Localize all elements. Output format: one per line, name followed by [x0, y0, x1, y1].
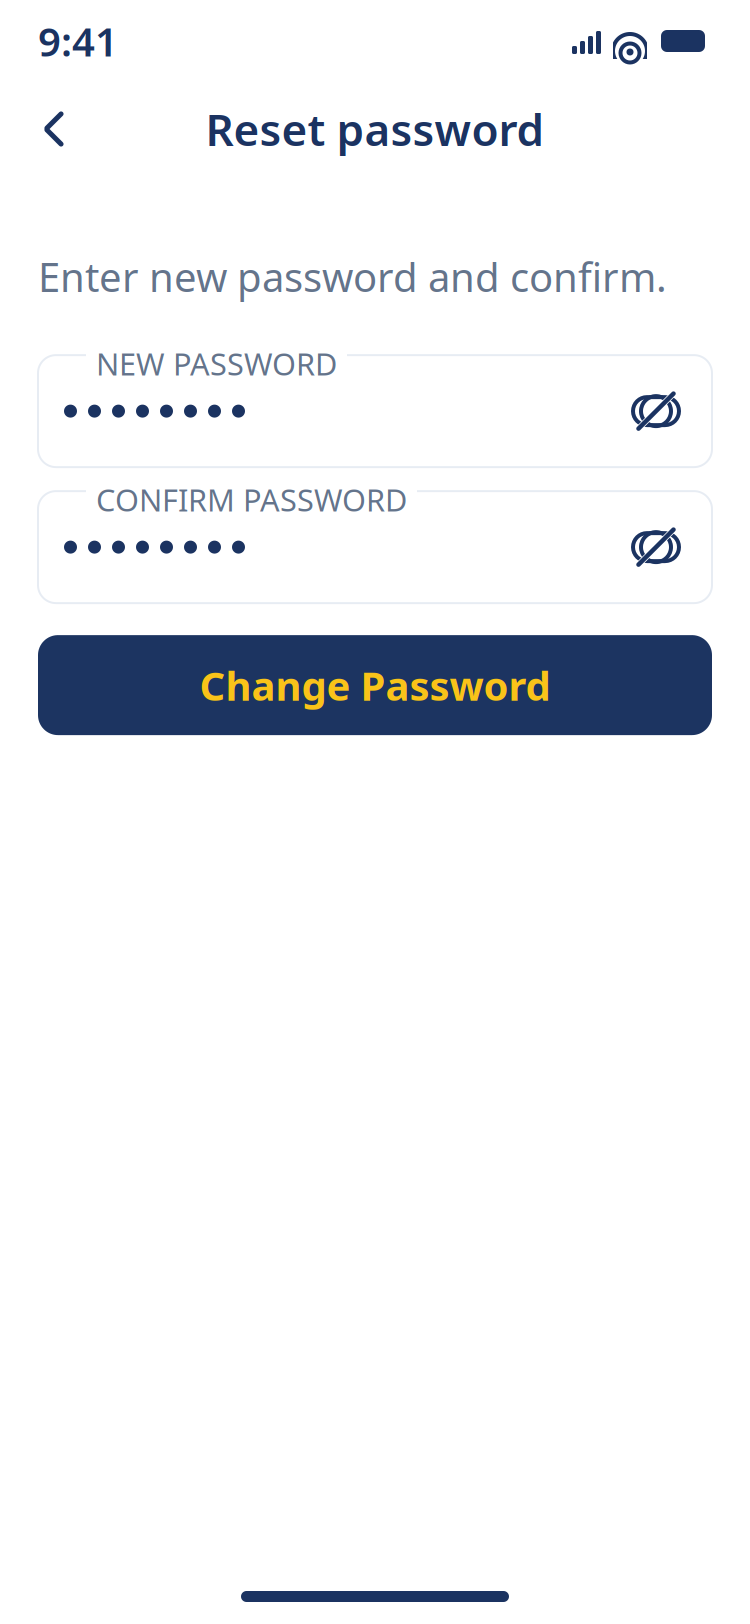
staticText: CONFIRM PASSWORD	[96, 479, 407, 520]
staticText: Enter new password and confirm.	[38, 250, 667, 303]
button[interactable]: Change Password	[38, 635, 712, 735]
staticText: Reset password	[205, 100, 544, 158]
staticText: Change Password	[199, 659, 550, 712]
button[interactable]: Show new password	[626, 381, 686, 441]
button[interactable]: Back	[22, 97, 86, 161]
staticText: NEW PASSWORD	[96, 343, 337, 384]
button[interactable]: Show confirm password	[626, 517, 686, 577]
staticText: 9:41	[38, 14, 118, 67]
